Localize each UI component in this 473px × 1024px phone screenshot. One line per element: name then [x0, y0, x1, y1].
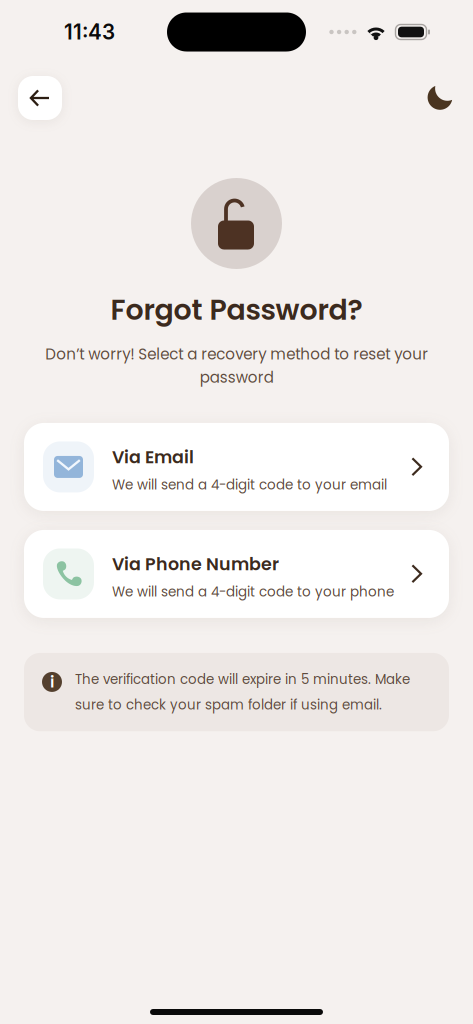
staticText: We will send a 4-digit code to your phon…: [112, 582, 394, 601]
staticText: The verification code will expire in 5 m…: [75, 670, 410, 714]
staticText: 11:43: [64, 19, 115, 44]
staticText: Forgot Password?: [110, 290, 362, 330]
button[interactable]: Via Email: [24, 423, 449, 511]
staticText: We will send a 4-digit code to your emai…: [112, 475, 387, 494]
staticText: Via Email: [112, 445, 194, 469]
staticText: Via Phone Number: [112, 552, 279, 576]
staticText: Don’t worry! Select a recovery method to…: [45, 344, 428, 388]
button[interactable]: Dark mode: [421, 78, 461, 118]
staticText: i: [50, 671, 54, 693]
button[interactable]: Back: [18, 76, 62, 120]
button[interactable]: Via Phone Number: [24, 530, 449, 618]
